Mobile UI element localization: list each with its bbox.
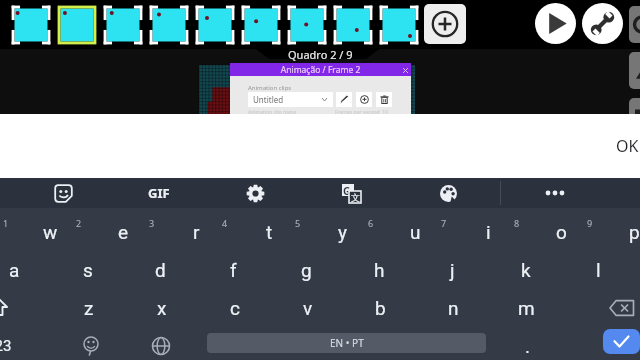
staticText: t <box>266 221 273 243</box>
button[interactable]: r <box>160 213 233 251</box>
button[interactable]: More options <box>536 178 574 208</box>
staticText: Animation clip name <box>248 109 297 116</box>
button[interactable]: o <box>525 213 598 251</box>
button[interactable]: h <box>343 251 416 289</box>
button[interactable]: y <box>306 213 379 251</box>
button[interactable]: s <box>51 251 124 289</box>
button[interactable]: Settings <box>582 3 623 44</box>
button[interactable] <box>379 5 420 46</box>
button[interactable]: u <box>379 213 452 251</box>
button[interactable]: q <box>0 213 14 251</box>
button[interactable]: w <box>14 213 87 251</box>
button[interactable]: d <box>124 251 197 289</box>
button[interactable]: x <box>125 289 198 327</box>
button[interactable] <box>241 5 282 46</box>
staticText: v <box>303 297 313 319</box>
button[interactable] <box>57 5 98 46</box>
button[interactable]: Translate <box>332 178 370 208</box>
button[interactable]: g <box>270 251 343 289</box>
button[interactable]: Tool 3 <box>629 98 640 135</box>
button[interactable]: t <box>233 213 306 251</box>
button[interactable]: Enter <box>603 329 640 354</box>
staticText: u <box>410 221 421 243</box>
staticText: y <box>338 221 347 243</box>
button[interactable]: Duplicate <box>356 92 372 107</box>
button[interactable]: Untitled <box>248 92 333 107</box>
staticText: b <box>375 297 386 319</box>
staticText: 9 <box>587 217 593 229</box>
button[interactable]: Tool 2 <box>629 52 640 89</box>
staticText: EN • PT <box>330 336 364 350</box>
staticText: G <box>343 184 351 196</box>
button[interactable]: v <box>271 289 344 327</box>
button[interactable]: Backspace <box>585 289 640 327</box>
button[interactable]: Play <box>535 3 576 44</box>
staticText: l <box>596 259 601 281</box>
button[interactable]: p <box>598 213 640 251</box>
button[interactable]: m <box>490 289 563 327</box>
staticText: x <box>157 297 167 319</box>
button[interactable]: j <box>416 251 489 289</box>
staticText: d <box>155 259 166 281</box>
button[interactable]: l <box>562 251 635 289</box>
button[interactable]: Emoji <box>54 327 127 360</box>
staticText: Frames per second 10 <box>335 109 388 116</box>
staticText: i <box>486 221 491 243</box>
button[interactable]: Settings <box>236 178 274 208</box>
staticText: 3 <box>149 217 155 229</box>
staticText: h <box>374 259 385 281</box>
staticText: Animação / Frame 2 <box>230 64 411 76</box>
staticText: r <box>193 221 200 243</box>
button[interactable]: e <box>87 213 160 251</box>
button[interactable]: Stickers <box>44 178 82 208</box>
staticText: n <box>448 297 459 319</box>
button[interactable]: k <box>489 251 562 289</box>
button[interactable]: Shift <box>0 289 34 327</box>
staticText: Quadro 2 / 9 <box>288 47 353 62</box>
button[interactable] <box>195 5 236 46</box>
button[interactable]: Edit <box>336 92 352 107</box>
staticText: 1 <box>3 217 9 229</box>
button[interactable]: c <box>198 289 271 327</box>
staticText: 2 <box>76 217 82 229</box>
staticText: k <box>521 259 531 281</box>
button[interactable]: Tool 1 <box>629 6 640 43</box>
staticText: g <box>301 259 312 281</box>
button[interactable]: ?123 <box>0 327 32 360</box>
button[interactable]: f <box>197 251 270 289</box>
staticText: c <box>230 297 240 319</box>
staticText: 4 <box>222 217 228 229</box>
button[interactable]: z <box>52 289 125 327</box>
button[interactable]: Change language <box>124 327 197 360</box>
button[interactable] <box>333 5 374 46</box>
staticText: f <box>230 259 237 281</box>
button[interactable] <box>11 5 52 46</box>
staticText: z <box>84 297 94 319</box>
button[interactable]: a <box>0 251 51 289</box>
staticText: 8 <box>514 217 520 229</box>
button[interactable]: n <box>417 289 490 327</box>
button[interactable] <box>149 5 190 46</box>
staticText: 文 <box>351 192 360 203</box>
button[interactable]: Add frame <box>424 4 466 44</box>
staticText: 5 <box>295 217 301 229</box>
button[interactable]: Close <box>399 64 411 76</box>
button[interactable]: . <box>491 327 564 360</box>
button[interactable]: Delete <box>376 92 392 107</box>
staticText: a <box>9 259 20 281</box>
staticText: 7 <box>441 217 447 229</box>
staticText: Untitled <box>253 94 284 105</box>
staticText: p <box>629 221 640 243</box>
button[interactable] <box>287 5 328 46</box>
button[interactable]: GIF <box>140 178 178 208</box>
staticText: 6 <box>368 217 374 229</box>
button[interactable]: EN • PT <box>207 333 486 353</box>
button[interactable]: i <box>452 213 525 251</box>
staticText: s <box>83 259 93 281</box>
button[interactable] <box>103 5 144 46</box>
button[interactable]: b <box>344 289 417 327</box>
button[interactable]: Themes <box>429 178 467 208</box>
staticText: . <box>525 335 531 357</box>
staticText: ?123 <box>0 337 12 355</box>
staticText: Animation clips <box>248 84 292 92</box>
